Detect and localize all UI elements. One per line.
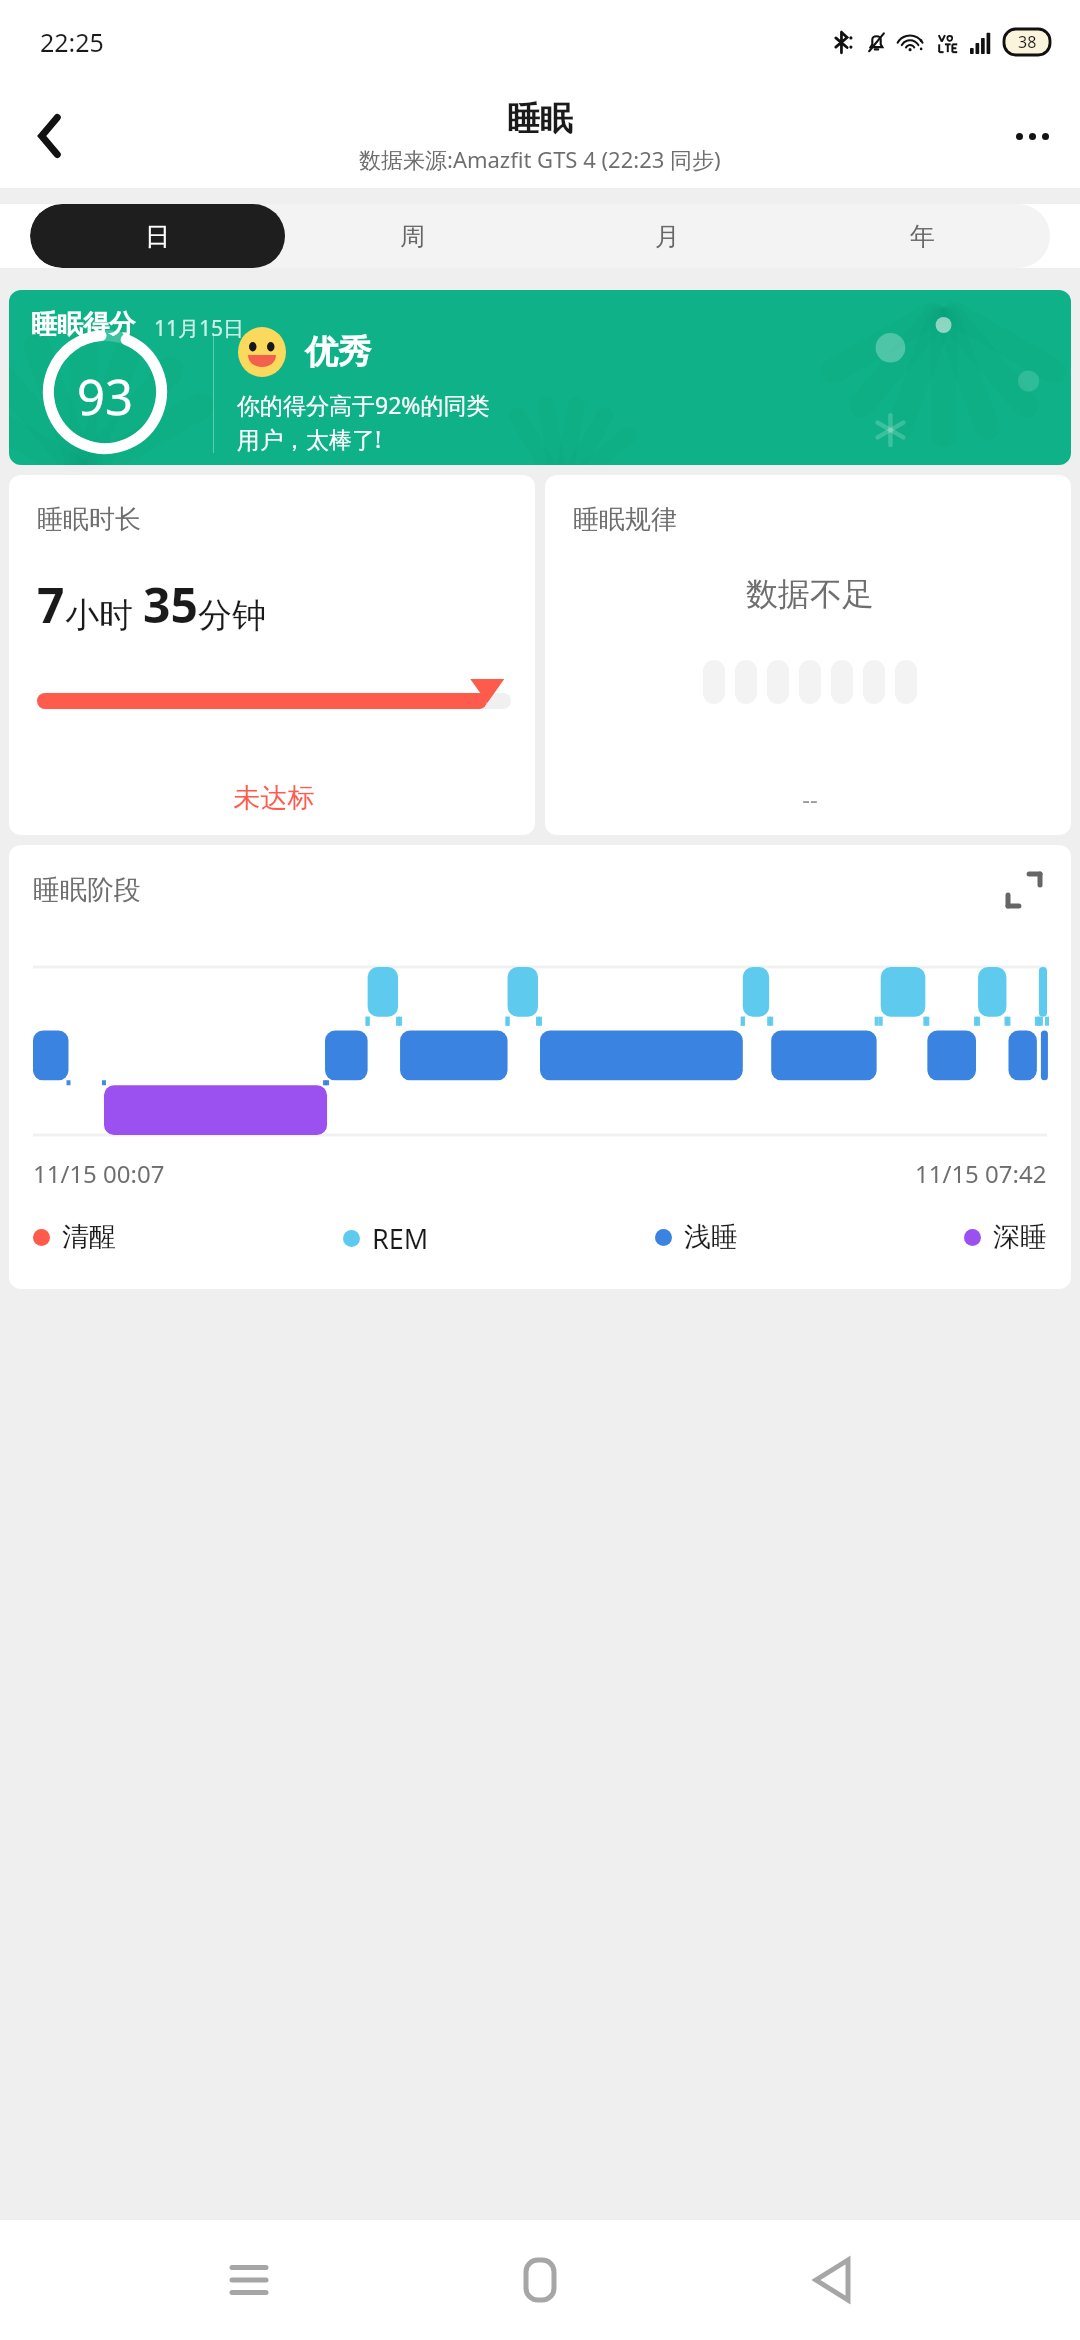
staticText: 35	[143, 572, 198, 637]
button[interactable]: Home	[497, 2237, 583, 2323]
staticText: 11/15 00:07	[33, 1157, 165, 1190]
staticText: 22:25	[40, 25, 104, 59]
staticText: REM	[372, 1220, 429, 1257]
staticText: 分钟	[198, 594, 266, 637]
staticText: 小时	[65, 594, 133, 637]
staticText: 清醒	[62, 1220, 116, 1254]
staticText: 优秀	[305, 331, 371, 373]
button[interactable]: 睡眠时长	[9, 475, 535, 835]
button[interactable]: 睡眠得分	[9, 290, 1071, 465]
button[interactable]: 睡眠规律	[545, 475, 1071, 835]
staticText: --	[573, 782, 1047, 815]
staticText: 数据不足	[573, 574, 1047, 614]
staticText: 睡眠规律	[573, 503, 677, 536]
staticText: 年	[910, 221, 935, 252]
button[interactable]: Back	[18, 104, 82, 168]
button[interactable]: 周	[285, 204, 540, 268]
staticText: 7	[37, 572, 65, 637]
button[interactable]: 日	[30, 204, 285, 268]
button[interactable]: Back	[789, 2237, 875, 2323]
staticText: 周	[400, 221, 425, 252]
button[interactable]: 月	[540, 204, 795, 268]
staticText: 睡眠	[507, 98, 573, 140]
staticText: 睡眠时长	[37, 503, 141, 536]
staticText: 深睡	[993, 1220, 1047, 1254]
staticText: 11/15 07:42	[915, 1157, 1047, 1190]
staticText: 睡眠得分	[31, 308, 135, 341]
staticText: 数据来源:Amazfit GTS 4 (22:23 同步)	[359, 144, 721, 174]
staticText: 日	[145, 221, 170, 252]
staticText: 93	[77, 363, 134, 430]
button[interactable]: More options	[1000, 104, 1064, 168]
button[interactable]: 睡眠阶段	[9, 845, 1071, 1289]
staticText: 你的得分高于92%的同类 用户，太棒了!	[237, 389, 490, 455]
staticText: 38	[1018, 31, 1037, 53]
staticText: 浅睡	[684, 1220, 738, 1254]
button[interactable]: Expand chart	[1001, 867, 1047, 913]
staticText: 睡眠阶段	[33, 873, 141, 907]
button[interactable]: 年	[795, 204, 1050, 268]
staticText: 未达标	[37, 781, 511, 815]
button[interactable]: Recent apps	[206, 2237, 292, 2323]
staticText: 月	[655, 221, 680, 252]
staticText: 11月15日	[154, 314, 245, 343]
